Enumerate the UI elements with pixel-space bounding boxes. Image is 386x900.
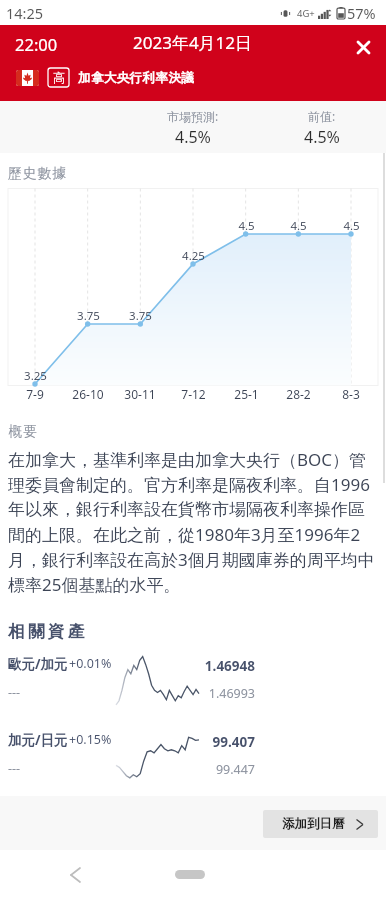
staticText: --- <box>8 684 21 701</box>
staticText: 概要 <box>8 423 37 440</box>
staticText: 4.5 <box>290 218 307 234</box>
staticText: 1.46948 <box>155 657 255 675</box>
staticText: 99.447 <box>155 761 255 778</box>
staticText: +0.15% <box>69 731 112 748</box>
staticText: 高 <box>53 70 65 85</box>
staticText: 市場預測: <box>167 108 219 124</box>
staticText: 1.46993 <box>155 685 255 702</box>
staticText: 7-12 <box>181 386 206 402</box>
staticText: 加元/日元 <box>8 731 68 749</box>
staticText: 3.25 <box>24 368 47 384</box>
staticText: 8-3 <box>342 386 360 402</box>
button[interactable]: Close <box>349 33 377 61</box>
button[interactable]: 加元/日元 <box>0 730 386 800</box>
button[interactable]: Back <box>62 862 88 888</box>
staticText: 14:25 <box>6 3 44 23</box>
staticText: 3.75 <box>77 308 100 324</box>
staticText: 4.5 <box>238 218 255 234</box>
staticText: 22:00 <box>15 33 58 55</box>
staticText: 添加到日曆 <box>282 816 345 832</box>
staticText: 99.407 <box>155 733 255 751</box>
staticText: 歐元/加元 <box>8 655 68 673</box>
staticText: 30-11 <box>124 386 156 402</box>
staticText: 4G+ <box>297 7 315 20</box>
staticText: 前值: <box>308 108 336 124</box>
button[interactable]: 添加到日曆 <box>263 810 378 838</box>
staticText: 2023年4月12日 <box>133 31 253 54</box>
staticText: 4.5 <box>343 218 360 234</box>
staticText: --- <box>8 760 21 777</box>
staticText: 57% <box>347 3 376 23</box>
staticText: +0.01% <box>69 655 112 672</box>
staticText: 28-2 <box>286 386 311 402</box>
staticText: 相關資產 <box>8 621 88 642</box>
staticText: 4.5% <box>175 126 211 148</box>
staticText: 25-1 <box>234 386 259 402</box>
staticText: 7-9 <box>26 386 44 402</box>
button[interactable]: 歐元/加元 <box>0 654 386 724</box>
button[interactable]: Home <box>175 870 205 879</box>
staticText: 歷史數據 <box>7 165 67 183</box>
staticText: 加拿大央行利率決議 <box>78 70 195 86</box>
staticText: 4.5% <box>304 126 340 148</box>
staticText: 4.25 <box>182 248 205 264</box>
staticText: 在加拿大，基準利率是由加拿大央行（BOC）管理委員會制定的。官方利率是隔夜利率。… <box>8 448 378 596</box>
staticText: 26-10 <box>72 386 104 402</box>
staticText: 3.75 <box>129 308 152 324</box>
